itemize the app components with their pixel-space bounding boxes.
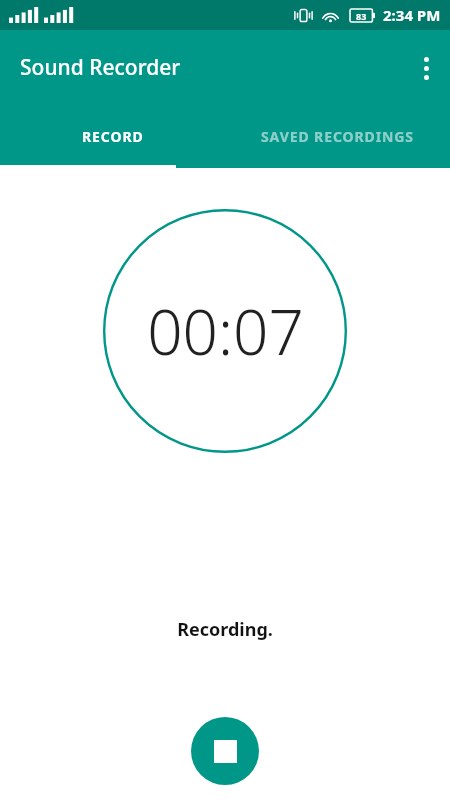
staticText: RECORD: [82, 127, 144, 146]
staticText: 00:07: [147, 289, 304, 373]
button[interactable]: SAVED RECORDINGS: [225, 105, 450, 168]
staticText: SAVED RECORDINGS: [261, 127, 414, 146]
button[interactable]: RECORD: [0, 105, 225, 168]
staticText: Sound Recorder: [20, 53, 181, 82]
staticText: 2:34 PM: [383, 5, 441, 25]
staticText: Recording.: [177, 617, 273, 642]
button[interactable]: More options: [402, 44, 450, 92]
staticText: 83: [356, 10, 367, 22]
button[interactable]: Stop recording: [191, 717, 259, 785]
